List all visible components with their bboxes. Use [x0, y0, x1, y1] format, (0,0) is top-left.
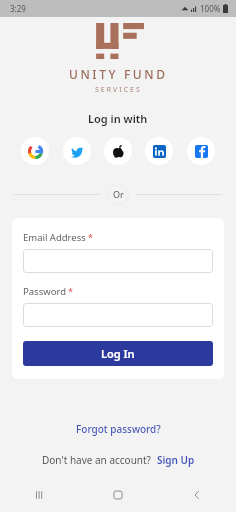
button[interactable]: Forgot password?: [70, 419, 167, 439]
button[interactable]: Sign in with Twitter: [63, 137, 91, 165]
button[interactable]: Home: [105, 482, 131, 508]
button[interactable]: Sign in with LinkedIn: [145, 137, 173, 165]
button[interactable]: Sign in with Facebook: [187, 137, 215, 165]
staticText: Or: [113, 188, 124, 200]
staticText: Password: [23, 285, 66, 298]
staticText: UNITY FUND: [69, 66, 168, 82]
button[interactable]: Email Address input: [23, 249, 213, 273]
button[interactable]: Back: [184, 482, 210, 508]
staticText: 100%: [200, 3, 221, 14]
button[interactable]: Password input: [23, 303, 213, 327]
staticText: Email Address: [23, 231, 86, 244]
button[interactable]: Log In: [23, 341, 213, 366]
staticText: Log In: [101, 346, 135, 361]
staticText: 3:29: [10, 3, 26, 14]
button[interactable]: Sign in with Apple: [104, 137, 132, 165]
staticText: Don't have an account?: [42, 453, 157, 467]
button[interactable]: Sign in with Google: [21, 137, 49, 165]
staticText: SERVICES: [95, 85, 142, 95]
staticText: Log in with: [88, 111, 148, 126]
staticText: *: [88, 231, 93, 243]
button[interactable]: Sign Up: [157, 453, 195, 467]
button[interactable]: Recent apps: [26, 482, 52, 508]
staticText: *: [68, 285, 73, 297]
